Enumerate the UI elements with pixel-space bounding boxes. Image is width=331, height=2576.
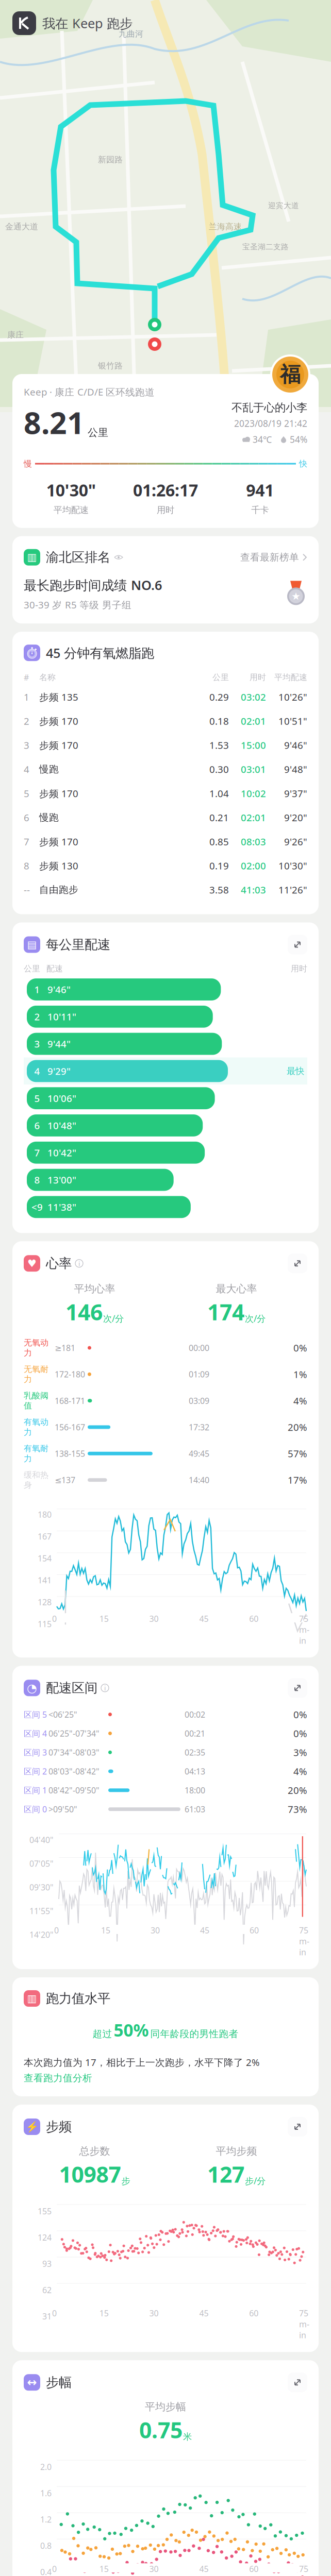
button[interactable]: Expand chart: [288, 2373, 307, 2392]
staticText: 75min: [299, 2308, 309, 2362]
staticText: 用时: [250, 672, 266, 682]
staticText: 10'26": [278, 691, 307, 703]
staticText: 127: [207, 2160, 244, 2189]
button[interactable]: Expand chart: [288, 2117, 307, 2137]
staticText: 3: [34, 1037, 40, 1050]
staticText: 同年龄段的男性跑者: [150, 2028, 238, 2040]
staticText: 0.21: [209, 811, 229, 824]
staticText: >09'50": [48, 1804, 77, 1815]
staticText: 10987: [59, 2160, 121, 2189]
staticText: 45: [199, 2563, 208, 2574]
staticText: 75min: [299, 1925, 309, 1979]
staticText: 0%: [293, 1727, 307, 1740]
staticText: 07'05": [29, 1858, 54, 1869]
staticText: 20%: [288, 1421, 307, 1433]
staticText: 11'55": [29, 1905, 54, 1916]
staticText: 缓和热身: [24, 1470, 48, 1490]
staticText: ♥: [27, 1258, 37, 1269]
staticText: #: [24, 672, 29, 683]
staticText: 2: [34, 1010, 40, 1023]
staticText: ≥181: [55, 1342, 75, 1353]
staticText: 名称: [39, 672, 56, 682]
staticText: 1: [34, 983, 40, 996]
staticText: 1.53: [209, 739, 229, 752]
staticText: i: [104, 1683, 106, 1692]
button[interactable]: 查看最新榜单: [240, 551, 307, 563]
staticText: 步频 170: [39, 787, 78, 800]
staticText: 迎宾大道: [268, 201, 299, 210]
staticText: 6: [34, 1119, 40, 1132]
staticText: 41:03: [241, 883, 266, 896]
staticText: 步幅: [46, 2374, 72, 2390]
staticText: 172-180: [55, 1369, 85, 1380]
staticText: ↔: [27, 2376, 37, 2389]
staticText: 155: [38, 2206, 52, 2217]
staticText: 04'40": [29, 1834, 54, 1845]
staticText: 03:01: [241, 763, 266, 776]
staticText: 9'44": [47, 1037, 71, 1050]
staticText: 公里: [24, 964, 40, 974]
staticText: 62: [42, 2284, 52, 2295]
button[interactable]: Keep: [12, 11, 36, 35]
staticText: 9'26": [284, 835, 307, 848]
staticText: 步频 170: [39, 739, 78, 752]
staticText: 0.75: [139, 2415, 183, 2444]
button[interactable]: Expand chart: [288, 935, 307, 954]
staticText: 2: [24, 715, 29, 727]
staticText: 无氧动力: [24, 1338, 48, 1358]
staticText: 0.18: [209, 715, 229, 727]
staticText: 60: [249, 2308, 258, 2319]
staticText: ◔: [27, 1681, 37, 1695]
staticText: 115: [38, 1618, 52, 1629]
staticText: 平均配速: [274, 672, 307, 682]
staticText: 138-155: [55, 1448, 85, 1459]
staticText: 10'48": [47, 1119, 76, 1132]
staticText: 4: [34, 1065, 40, 1077]
staticText: 168-171: [55, 1395, 85, 1406]
staticText: 45: [199, 1613, 208, 1624]
button[interactable]: 查看跑力值分析: [24, 2072, 92, 2084]
staticText: 174: [207, 1297, 244, 1326]
staticText: 1: [24, 691, 29, 703]
button[interactable]: Expand chart: [288, 1678, 307, 1698]
staticText: ⚡: [26, 2121, 38, 2133]
staticText: 9'46": [47, 983, 71, 996]
staticText: 11'38": [47, 1201, 76, 1213]
staticText: 4%: [293, 1765, 307, 1778]
staticText: 01:09: [189, 1369, 209, 1380]
staticText: 00:02: [185, 1709, 205, 1720]
staticText: 11'26": [278, 883, 307, 896]
staticText: 08'42"-09'50": [48, 1785, 100, 1796]
staticText: 最大心率: [216, 1282, 257, 1295]
staticText: 45 分钟有氧燃脂跑: [46, 644, 154, 661]
staticText: <06'25": [48, 1709, 77, 1720]
staticText: 慢跑: [39, 763, 59, 775]
staticText: 30-39 岁 R5 等级 男子组: [24, 598, 131, 611]
staticText: 13'00": [47, 1173, 76, 1186]
button[interactable]: Expand chart: [288, 1254, 307, 1273]
staticText: 超过: [93, 2028, 112, 2040]
staticText: 查看最新榜单: [240, 551, 299, 563]
staticText: --: [24, 883, 30, 896]
staticText: 次/分: [245, 1312, 266, 1324]
staticText: 公里: [212, 672, 229, 682]
staticText: 75min: [299, 1613, 309, 1668]
staticText: 米: [183, 2431, 192, 2442]
staticText: 3: [24, 739, 29, 752]
staticText: 福: [280, 362, 301, 387]
staticText: 10'30": [46, 479, 96, 501]
staticText: 自由跑步: [39, 884, 78, 896]
staticText: 167: [38, 1531, 52, 1542]
staticText: 我在 Keep 跑步: [42, 15, 133, 32]
staticText: 17%: [288, 1474, 307, 1486]
staticText: 30: [149, 2563, 159, 2574]
staticText: ▥: [27, 1993, 37, 2004]
staticText: 步频 170: [39, 715, 78, 727]
staticText: 124: [38, 2232, 52, 2243]
staticText: 步频 130: [39, 859, 78, 872]
staticText: ▤: [27, 939, 37, 950]
staticText: 00:00: [189, 1342, 209, 1353]
staticText: 慢跑: [39, 812, 59, 823]
staticText: 8: [24, 859, 29, 872]
staticText: 00:21: [185, 1728, 205, 1739]
